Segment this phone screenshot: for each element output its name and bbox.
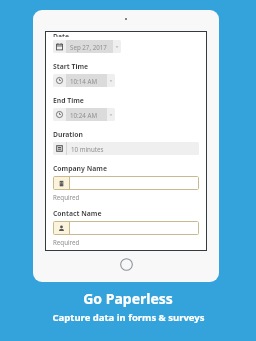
staticText: Capture data in forms & surveys bbox=[52, 311, 205, 324]
staticText: 10:14 AM bbox=[70, 77, 97, 85]
button[interactable]: Select date bbox=[53, 40, 121, 53]
staticText: Start Time bbox=[53, 62, 89, 71]
button[interactable]: Contact name input bbox=[53, 221, 199, 235]
staticText: Required bbox=[53, 193, 80, 201]
staticText: Contact Name bbox=[53, 209, 102, 218]
staticText: Date bbox=[53, 32, 70, 37]
button[interactable]: 10 minutes bbox=[53, 142, 199, 155]
staticText: Go Paperless bbox=[83, 289, 173, 308]
staticText: Duration bbox=[53, 130, 84, 139]
staticText: Company Name bbox=[53, 164, 107, 173]
staticText: Sep 27, 2017 bbox=[70, 43, 107, 51]
staticText: 10 minutes bbox=[71, 145, 104, 153]
button[interactable]: Select start time bbox=[53, 74, 115, 87]
staticText: 10:24 AM bbox=[70, 111, 97, 119]
button[interactable]: Select end time bbox=[53, 108, 115, 121]
staticText: Required bbox=[53, 238, 80, 246]
staticText: End Time bbox=[53, 96, 84, 105]
button[interactable]: Company name input bbox=[53, 176, 199, 190]
